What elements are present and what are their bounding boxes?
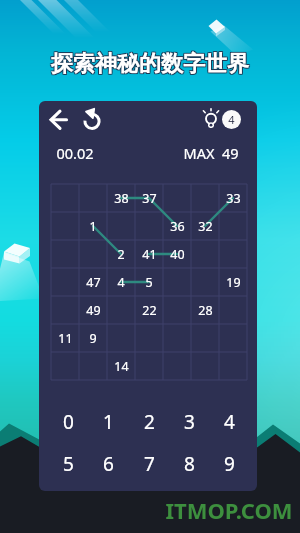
button[interactable]: 1 bbox=[88, 402, 128, 442]
button[interactable]: 33 bbox=[219, 184, 247, 212]
button[interactable]: 7 bbox=[129, 444, 169, 484]
button[interactable]: 9 bbox=[209, 444, 249, 484]
staticText: 38 bbox=[114, 190, 129, 207]
button[interactable]: 49 bbox=[79, 296, 107, 324]
staticText: 3 bbox=[184, 409, 195, 435]
staticText: 5 bbox=[63, 451, 74, 477]
staticText: 探索神秘的数字世界 bbox=[51, 49, 249, 77]
staticText: 14 bbox=[114, 358, 129, 375]
button[interactable]: 22 bbox=[135, 296, 163, 324]
staticText: 2 bbox=[117, 246, 125, 263]
staticText: 探索神秘的数字世界 bbox=[50, 49, 248, 77]
staticText: 探索神秘的数字世界 bbox=[52, 51, 250, 79]
staticText: 2 bbox=[144, 409, 155, 435]
staticText: 41 bbox=[142, 246, 157, 263]
button[interactable]: 3 bbox=[169, 402, 209, 442]
button[interactable]: 1 bbox=[79, 212, 107, 240]
button[interactable]: 0 bbox=[48, 402, 88, 442]
button[interactable]: 40 bbox=[163, 240, 191, 268]
staticText: 00.02 bbox=[56, 143, 94, 163]
button[interactable]: 28 bbox=[191, 296, 219, 324]
button[interactable]: 38 bbox=[107, 184, 135, 212]
staticText: 49 bbox=[86, 302, 101, 319]
staticText: 0 bbox=[63, 409, 74, 435]
staticText: 28 bbox=[198, 302, 213, 319]
staticText: 40 bbox=[170, 246, 185, 263]
staticText: 探索神秘的数字世界 bbox=[50, 50, 248, 78]
staticText: 5 bbox=[145, 274, 153, 291]
staticText: 7 bbox=[144, 451, 155, 477]
button[interactable]: 4 bbox=[222, 110, 241, 129]
staticText: 4 bbox=[224, 409, 235, 435]
button[interactable]: Hint bbox=[199, 105, 223, 129]
button[interactable]: 47 bbox=[79, 268, 107, 296]
staticText: MAX 49 bbox=[183, 143, 239, 163]
button[interactable]: 11 bbox=[51, 324, 79, 352]
button[interactable]: 36 bbox=[163, 212, 191, 240]
staticText: 探索神秘的数字世界 bbox=[52, 50, 250, 78]
staticText: 探索神秘的数字世界 bbox=[52, 49, 250, 77]
staticText: 探索神秘的数字世界 bbox=[50, 51, 248, 79]
staticText: 9 bbox=[224, 451, 235, 477]
button[interactable]: 37 bbox=[135, 184, 163, 212]
button[interactable]: 14 bbox=[107, 352, 135, 380]
button[interactable]: 9 bbox=[79, 324, 107, 352]
staticText: 22 bbox=[142, 302, 157, 319]
staticText: 1 bbox=[103, 409, 114, 435]
button[interactable]: Back bbox=[47, 106, 73, 132]
button[interactable]: 5 bbox=[48, 444, 88, 484]
button[interactable]: Restart bbox=[79, 107, 105, 133]
staticText: 4 bbox=[117, 274, 125, 291]
button[interactable]: 2 bbox=[129, 402, 169, 442]
button[interactable]: 32 bbox=[191, 212, 219, 240]
staticText: 探索神秘的数字世界 bbox=[51, 50, 249, 78]
staticText: 36 bbox=[170, 218, 185, 235]
staticText: ITMOP.COM bbox=[165, 495, 293, 525]
staticText: 4 bbox=[228, 112, 235, 127]
button[interactable]: 8 bbox=[169, 444, 209, 484]
staticText: 47 bbox=[86, 274, 101, 291]
button[interactable]: 6 bbox=[88, 444, 128, 484]
staticText: 1 bbox=[89, 218, 97, 235]
staticText: 探索神秘的数字世界 bbox=[51, 51, 249, 79]
button[interactable]: 4 bbox=[107, 268, 135, 296]
staticText: 37 bbox=[142, 190, 157, 207]
staticText: 9 bbox=[89, 330, 97, 347]
button[interactable]: 19 bbox=[219, 268, 247, 296]
staticText: 32 bbox=[198, 218, 213, 235]
staticText: 33 bbox=[226, 190, 241, 207]
button[interactable]: 41 bbox=[135, 240, 163, 268]
staticText: 6 bbox=[103, 451, 114, 477]
staticText: 8 bbox=[184, 451, 195, 477]
staticText: 11 bbox=[58, 330, 73, 347]
staticText: 19 bbox=[226, 274, 241, 291]
button[interactable]: 5 bbox=[135, 268, 163, 296]
button[interactable]: 4 bbox=[209, 402, 249, 442]
button[interactable]: 2 bbox=[107, 240, 135, 268]
